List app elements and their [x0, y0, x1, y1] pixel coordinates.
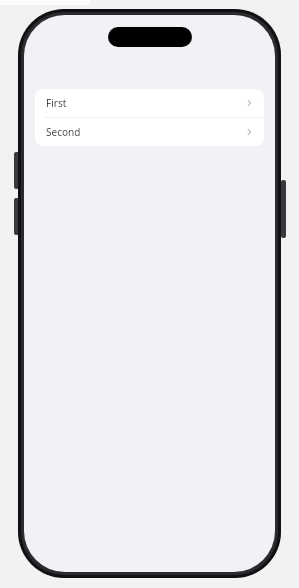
staticText: First [46, 96, 244, 110]
button[interactable]: Second [35, 118, 264, 146]
other: Open First [244, 98, 254, 108]
staticText: Second [46, 125, 244, 139]
button[interactable]: First [35, 89, 264, 117]
other: Open Second [244, 127, 254, 137]
